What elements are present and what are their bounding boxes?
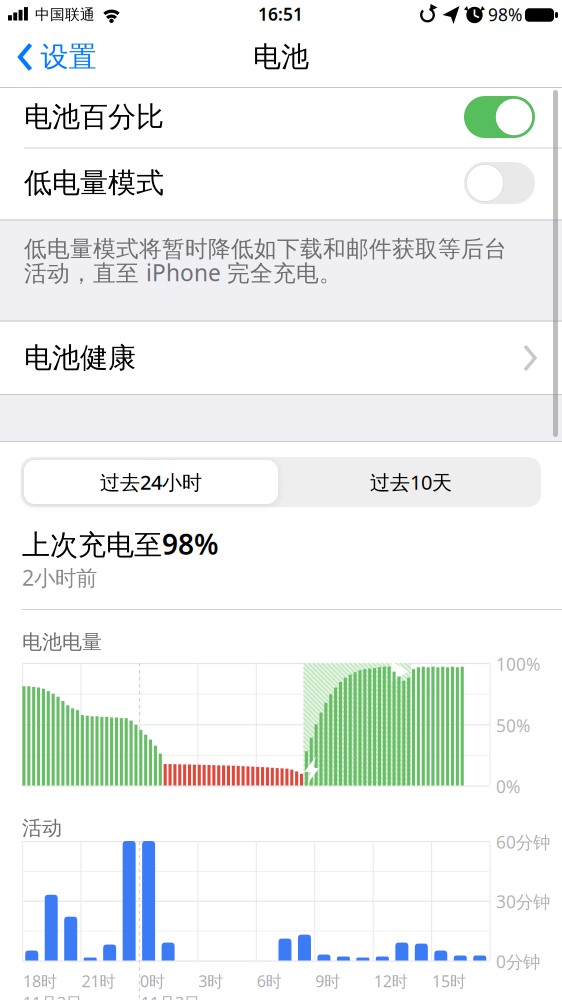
staticText: 30分钟 [496, 890, 550, 913]
staticText: 15时 [432, 970, 466, 992]
button[interactable]: 过去10天 [284, 460, 538, 504]
staticText: 18时 [23, 970, 57, 992]
staticText: 60分钟 [496, 830, 550, 853]
staticText: 设置 [40, 40, 96, 74]
staticText: 电池百分比 [24, 100, 164, 134]
staticText: 2小时前 [22, 563, 97, 592]
staticText: 电池健康 [24, 341, 136, 375]
button[interactable]: 过去24小时 [24, 460, 278, 504]
staticText: 过去10天 [370, 469, 452, 495]
staticText: 16:51 [258, 2, 303, 25]
staticText: 过去24小时 [100, 469, 202, 495]
staticText: 100% [496, 652, 540, 675]
staticText: 0% [496, 775, 520, 798]
staticText: 3时 [198, 970, 223, 992]
staticText: 低电量模式 [24, 166, 164, 200]
staticText: 上次充电至98% [22, 525, 219, 563]
staticText: 电池 [253, 40, 309, 74]
staticText: 12时 [374, 970, 408, 992]
staticText: 11月2日 [23, 992, 82, 1000]
button[interactable]: 低电量模式 [464, 162, 535, 204]
staticText: 6时 [257, 970, 282, 992]
button[interactable]: 返回设置 [17, 35, 96, 79]
staticText: 中国联通 [35, 5, 95, 23]
staticText: 9时 [315, 970, 340, 992]
staticText: 电池电量 [22, 630, 102, 654]
staticText: 0时 [140, 970, 165, 992]
staticText: 21时 [81, 970, 115, 992]
staticText: 98% [488, 3, 522, 26]
staticText: 低电量模式将暂时降低如下载和邮件获取等后台 [24, 235, 507, 263]
staticText: 活动 [22, 816, 62, 840]
staticText: 50% [496, 714, 530, 737]
staticText: 活动，直至 iPhone 完全充电。 [24, 257, 342, 287]
staticText: 11月3日 [141, 992, 200, 1000]
staticText: 0分钟 [496, 950, 540, 973]
button[interactable]: 电池百分比 [464, 96, 535, 138]
button[interactable]: 电池健康 [0, 322, 562, 393]
